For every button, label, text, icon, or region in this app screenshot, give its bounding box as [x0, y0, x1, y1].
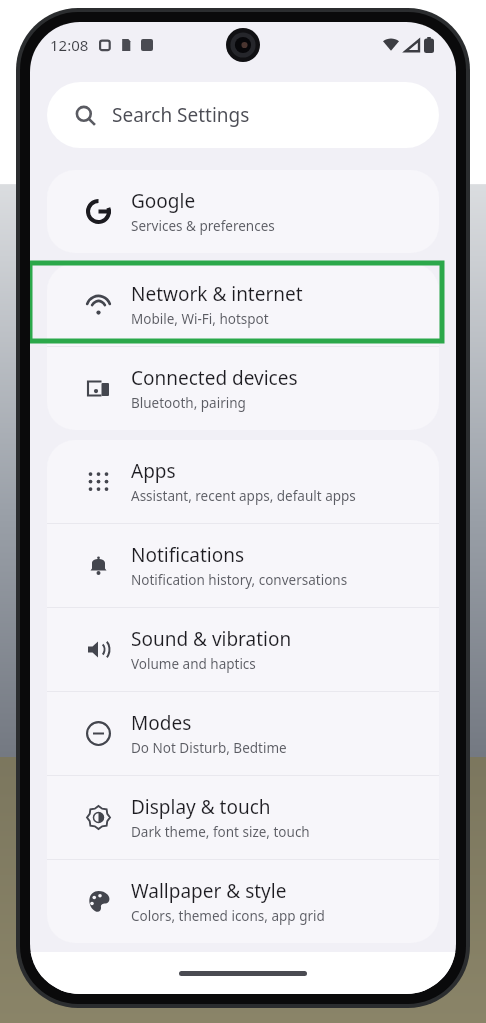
staticText: Services & preferences [131, 217, 275, 235]
staticText: Dark theme, font size, touch [131, 823, 310, 841]
button[interactable]: Google [47, 170, 439, 253]
staticText: Bluetooth, pairing [131, 394, 246, 412]
staticText: Modes [131, 710, 192, 736]
button[interactable]: Notifications [47, 524, 439, 607]
staticText: Wallpaper & style [131, 878, 287, 904]
button[interactable]: Network & internet [47, 263, 439, 346]
button[interactable]: Sound & vibration [47, 608, 439, 691]
staticText: Apps [131, 458, 176, 484]
button[interactable]: Search Settings [47, 82, 439, 148]
button[interactable]: Wallpaper & style [47, 860, 439, 943]
staticText: Volume and haptics [131, 655, 256, 673]
staticText: Do Not Disturb, Bedtime [131, 739, 287, 757]
staticText: Connected devices [131, 365, 298, 391]
staticText: Colors, themed icons, app grid [131, 907, 325, 925]
staticText: Search Settings [112, 102, 250, 128]
staticText: Sound & vibration [131, 626, 292, 652]
staticText: Network & internet [131, 281, 303, 307]
staticText: Notifications [131, 542, 245, 568]
staticText: Display & touch [131, 794, 271, 820]
staticText: 12:08 [50, 35, 89, 55]
staticText: Notification history, conversations [131, 571, 348, 589]
staticText: Assistant, recent apps, default apps [131, 487, 356, 505]
button[interactable]: Modes [47, 692, 439, 775]
staticText: Mobile, Wi-Fi, hotspot [131, 310, 269, 328]
button[interactable]: Display & touch [47, 776, 439, 859]
button[interactable]: Connected devices [47, 347, 439, 430]
staticText: Google [131, 188, 196, 214]
button[interactable]: Apps [47, 440, 439, 523]
